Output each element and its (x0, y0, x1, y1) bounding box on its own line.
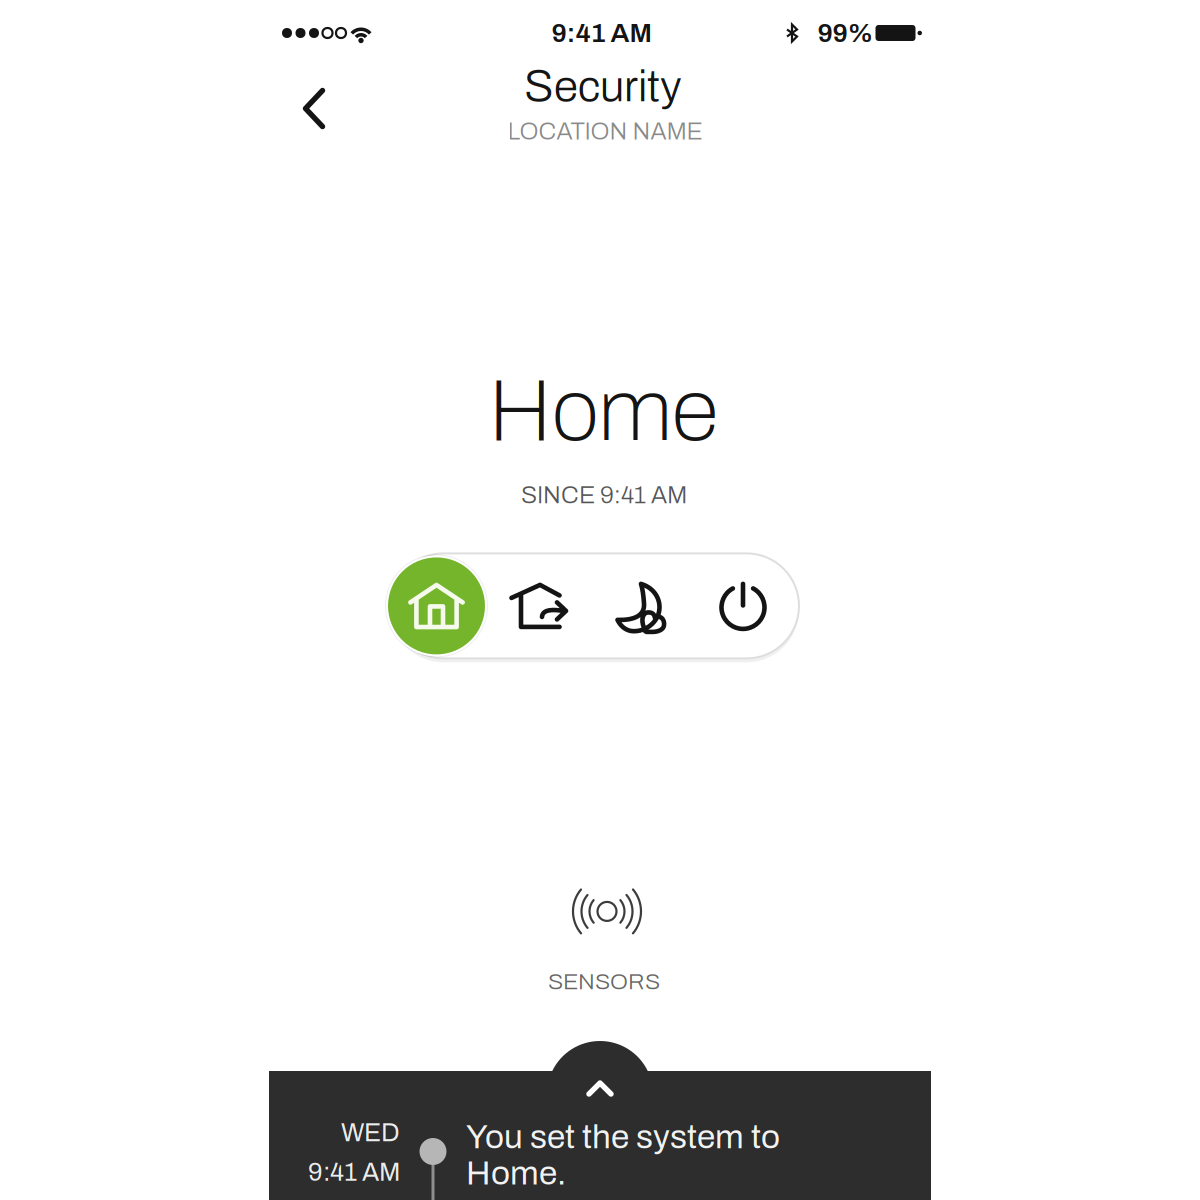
staticText: 9:41 AM (551, 18, 652, 47)
button[interactable]: Away mode (487, 553, 591, 658)
staticText: SENSORS (548, 969, 660, 994)
staticText: Home (488, 364, 718, 458)
button[interactable]: Home mode (386, 553, 487, 658)
staticText: 99% (817, 18, 873, 47)
staticText: 9:41 AM (308, 1159, 400, 1186)
staticText: SINCE 9:41 AM (521, 482, 687, 508)
button[interactable]: Night mode (591, 553, 692, 658)
button[interactable]: Expand activity log (547, 1041, 653, 1109)
staticText: WED (341, 1119, 400, 1147)
button[interactable]: Back (269, 43, 342, 141)
staticText: Security (524, 62, 682, 110)
button[interactable]: Off mode (692, 553, 794, 658)
staticText: LOCATION NAME (507, 118, 702, 144)
staticText: You set the system to Home. (466, 1119, 780, 1191)
